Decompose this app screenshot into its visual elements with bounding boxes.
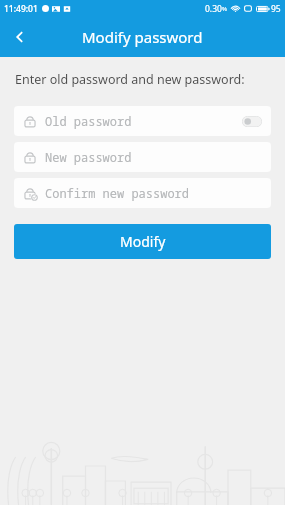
staticText: 11:49:01: [4, 3, 38, 15]
staticText: 0.30: [205, 3, 222, 15]
staticText: 95: [271, 3, 281, 15]
button[interactable]: [242, 116, 262, 127]
staticText: Confirm new password: [45, 185, 190, 201]
staticText: Modify: [120, 232, 166, 251]
button[interactable]: New password: [23, 142, 262, 172]
button[interactable]: Old password: [23, 106, 262, 136]
staticText: Enter old password and new password:: [15, 71, 245, 88]
staticText: %: [222, 5, 227, 13]
staticText: Old password: [45, 113, 132, 129]
button[interactable]: Modify: [14, 224, 271, 259]
button[interactable]: Confirm new password: [23, 178, 262, 208]
button[interactable]: Back: [0, 17, 40, 57]
staticText: Modify password: [82, 27, 203, 47]
staticText: New password: [45, 149, 132, 165]
